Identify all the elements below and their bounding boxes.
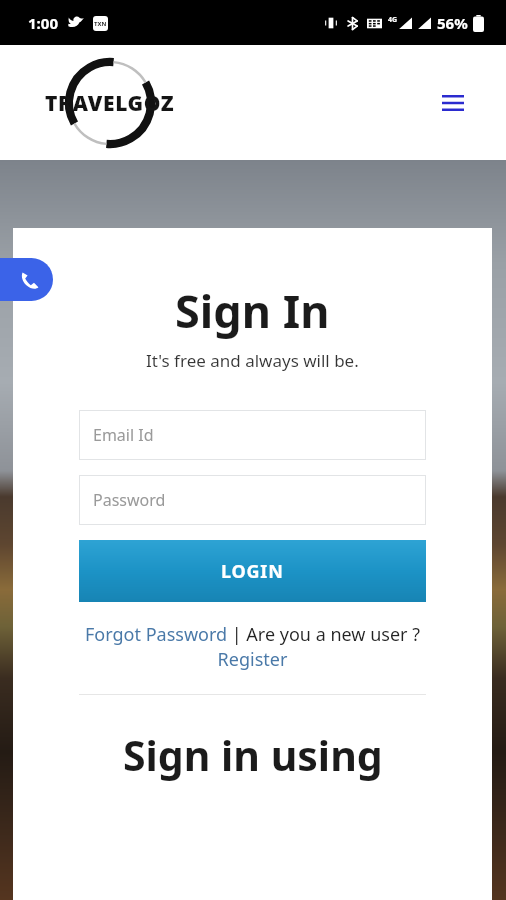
button[interactable]: LOGIN [79, 540, 426, 602]
staticText: Forgot Password | Are you a new user ? R… [79, 622, 426, 672]
staticText: Password [93, 489, 166, 511]
button[interactable]: Password [79, 475, 426, 525]
staticText: Sign In [175, 280, 330, 341]
staticText: Sign in using [123, 727, 383, 783]
staticText: 56% [437, 13, 468, 33]
button[interactable]: Forgot Password | Are you a new user ? R… [79, 622, 426, 672]
button[interactable]: Email Id [79, 410, 426, 460]
staticText: LOGIN [221, 559, 284, 584]
staticText: TRAVELGOZ [45, 89, 175, 118]
staticText: It's free and always will be. [146, 349, 359, 372]
staticText: 4G [388, 15, 398, 25]
staticText: TXN [94, 20, 107, 28]
button[interactable]: TRAVELGOZ [30, 53, 190, 153]
staticText: 1:00 [28, 13, 58, 33]
button[interactable]: Call us [0, 258, 53, 301]
staticText: Email Id [93, 424, 154, 446]
button[interactable]: Open navigation menu [431, 81, 475, 125]
